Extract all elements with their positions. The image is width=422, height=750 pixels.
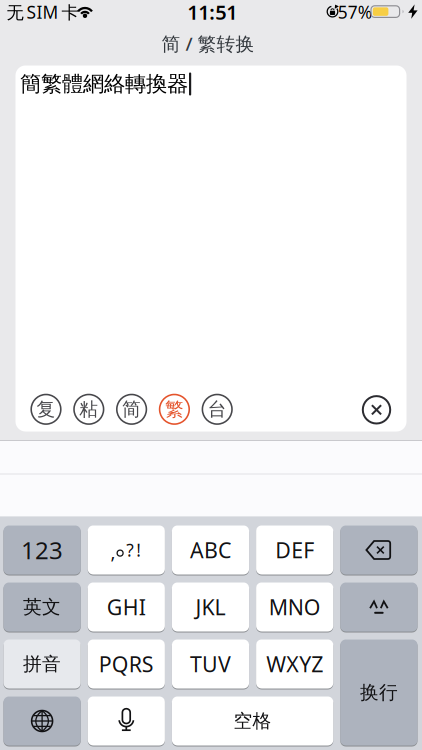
staticText: 英文: [23, 595, 61, 618]
button[interactable]: 复: [31, 394, 61, 424]
button[interactable]: 粘: [74, 394, 104, 424]
staticText: ,: [111, 540, 116, 565]
staticText: WXYZ: [266, 650, 323, 678]
button[interactable]: 台: [202, 394, 232, 424]
staticText: 无 SIM 卡: [6, 0, 78, 23]
button[interactable]: 英文: [3, 582, 81, 631]
button[interactable]: 123: [3, 525, 81, 574]
staticText: PQRS: [99, 650, 154, 678]
staticText: 繁: [165, 398, 184, 421]
staticText: !: [136, 538, 141, 561]
staticText: 简: [122, 398, 141, 421]
staticText: DEF: [275, 536, 314, 564]
button[interactable]: 简: [117, 394, 146, 424]
staticText: 11:51: [187, 0, 237, 25]
button[interactable]: 换行: [340, 639, 417, 745]
staticText: JKL: [195, 593, 225, 621]
staticText: GHI: [107, 593, 146, 621]
button[interactable]: ABC: [172, 525, 249, 574]
staticText: 簡繁體網絡轉換器: [20, 71, 188, 97]
button[interactable]: TUV: [172, 639, 249, 688]
staticText: TUV: [190, 650, 231, 678]
button[interactable]: 下一个输入法: [3, 696, 81, 745]
button[interactable]: JKL: [172, 582, 249, 631]
staticText: 123: [21, 534, 63, 566]
button[interactable]: WXYZ: [256, 639, 333, 688]
button[interactable]: 删除: [340, 525, 417, 574]
button[interactable]: PQRS: [88, 639, 165, 688]
button[interactable]: MNO: [256, 582, 333, 631]
staticText: 粘: [79, 398, 98, 421]
staticText: ABC: [190, 536, 231, 564]
staticText: 换行: [360, 681, 398, 704]
staticText: 复: [36, 398, 55, 421]
staticText: 台: [208, 398, 227, 421]
staticText: 简 / 繁转换: [161, 31, 254, 56]
staticText: MNO: [269, 593, 321, 621]
button[interactable]: 听写: [88, 696, 165, 745]
button[interactable]: 拼音: [3, 639, 81, 688]
staticText: 57%: [338, 0, 372, 23]
button[interactable]: 空格: [172, 696, 333, 745]
button[interactable]: 繁: [160, 394, 189, 424]
staticText: ?: [126, 538, 134, 561]
button[interactable]: 表情符号 ^_^: [340, 582, 417, 631]
staticText: 空格: [234, 709, 272, 732]
button[interactable]: ,: [88, 525, 165, 574]
staticText: 拼音: [23, 652, 61, 675]
button[interactable]: 清空: [363, 396, 390, 423]
button[interactable]: DEF: [256, 525, 333, 574]
button[interactable]: GHI: [88, 582, 165, 631]
